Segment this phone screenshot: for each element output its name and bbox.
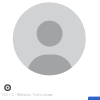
button[interactable]: License: [3, 83, 13, 93]
staticText: CC0 1.0 · Wikimedia · Public domain: [2, 93, 53, 97]
